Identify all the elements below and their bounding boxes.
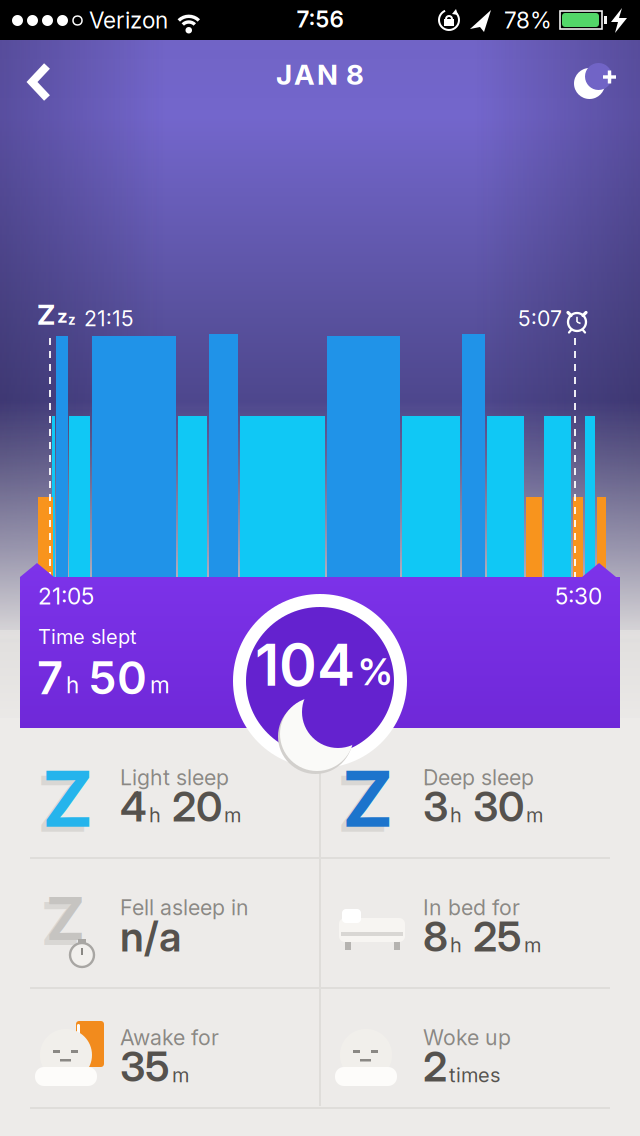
staticText: 4 — [120, 782, 147, 831]
staticText: 8 — [423, 912, 448, 961]
button[interactable]: Add sleep — [572, 60, 624, 108]
staticText: Z — [37, 758, 88, 849]
staticText: n/a — [120, 912, 181, 961]
staticText: Z — [41, 889, 80, 958]
staticText: Time slept — [38, 625, 137, 649]
staticText: m — [172, 1063, 189, 1087]
staticText: 3 — [423, 782, 448, 831]
staticText: m — [224, 803, 241, 827]
staticText: 30 — [464, 782, 524, 831]
staticText: J A N 8 — [276, 58, 364, 91]
staticText: 7:56 — [296, 6, 343, 33]
staticText: times — [449, 1063, 500, 1087]
staticText: z — [57, 305, 68, 327]
staticText: % — [358, 650, 393, 694]
staticText: 21:15 — [84, 306, 134, 331]
staticText: Z — [342, 753, 393, 844]
staticText: Z — [337, 758, 388, 849]
staticText: h — [66, 672, 79, 698]
staticText: Verizon — [89, 7, 168, 34]
staticText: 104 — [255, 631, 355, 699]
staticText: 5:07 — [518, 306, 562, 331]
staticText: Z — [37, 298, 55, 331]
staticText: 50 — [88, 651, 147, 704]
staticText: In bed for — [423, 895, 520, 920]
staticText: Woke up — [423, 1025, 511, 1050]
staticText: 7 — [37, 651, 63, 704]
staticText: z — [68, 312, 76, 328]
staticText: m — [150, 672, 170, 698]
staticText: Z — [42, 753, 93, 844]
staticText: 5:30 — [555, 583, 602, 610]
staticText: 21:05 — [38, 583, 94, 610]
staticText: 35 — [120, 1042, 170, 1091]
staticText: Light sleep — [120, 765, 229, 790]
button[interactable]: Back — [16, 61, 64, 103]
staticText: m — [524, 933, 541, 957]
staticText: 2 — [423, 1042, 447, 1091]
staticText: h — [450, 803, 462, 827]
staticText: Fell asleep in — [120, 895, 249, 920]
staticText: Deep sleep — [423, 765, 534, 790]
staticText: 78% — [504, 7, 552, 34]
staticText: h — [149, 803, 161, 827]
staticText: m — [526, 803, 543, 827]
staticText: Z — [46, 884, 85, 953]
staticText: 20 — [163, 782, 222, 831]
staticText: h — [450, 933, 462, 957]
staticText: Awake for — [120, 1025, 219, 1050]
staticText: 25 — [464, 912, 522, 961]
